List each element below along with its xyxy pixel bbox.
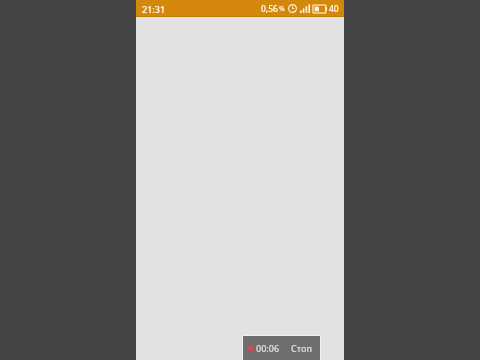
staticText: % [279, 4, 285, 13]
staticText: 0,56 [261, 3, 278, 15]
staticText: 21:31 [142, 3, 166, 15]
staticText: Стоп [291, 342, 312, 354]
staticText: 00:06 [256, 342, 280, 354]
button[interactable]: Стоп [288, 340, 315, 356]
staticText: 40 [329, 3, 339, 15]
